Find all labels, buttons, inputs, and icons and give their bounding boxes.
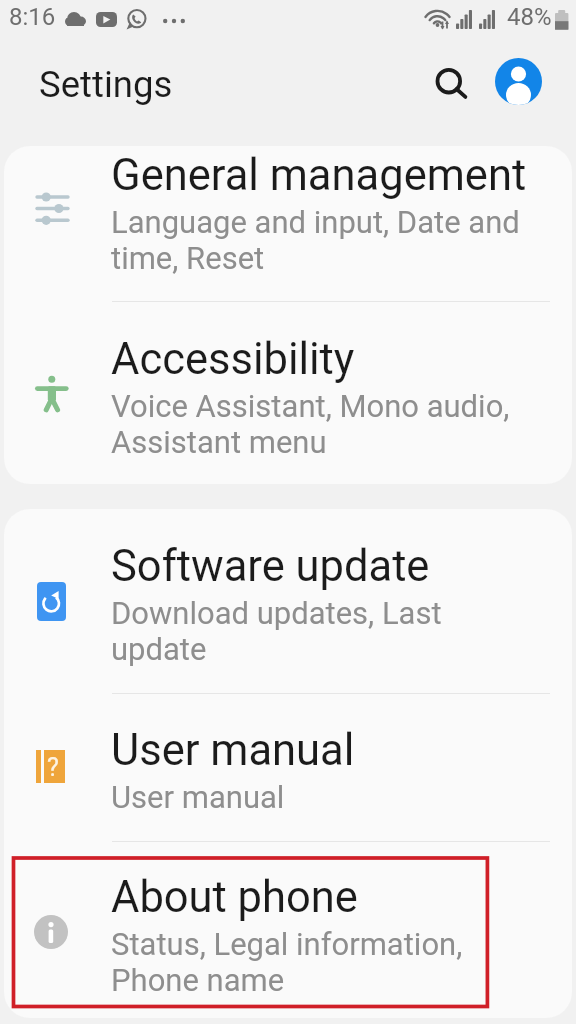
staticText: Status, Legal information, Phone name: [111, 926, 463, 998]
staticText: Accessibility: [111, 334, 355, 385]
staticText: ?: [47, 753, 59, 782]
staticText: Settings: [39, 63, 173, 106]
button[interactable]: Search: [424, 58, 482, 116]
button[interactable]: Accessibility: [4, 301, 572, 484]
staticText: Voice Assistant, Mono audio, Assistant m…: [111, 388, 510, 460]
staticText: About phone: [111, 872, 358, 923]
staticText: Download updates, Last update: [111, 595, 442, 667]
button[interactable]: Software update: [4, 509, 572, 693]
staticText: User manual: [111, 725, 355, 776]
staticText: 48%: [507, 3, 552, 31]
staticText: 8:16: [9, 3, 56, 31]
button[interactable]: Account: [495, 58, 542, 105]
staticText: Language and input, Date and time, Reset: [111, 204, 520, 276]
staticText: User manual: [111, 779, 285, 815]
staticText: General management: [111, 150, 527, 201]
button[interactable]: ?: [4, 693, 572, 841]
button[interactable]: About phone: [4, 841, 572, 1018]
staticText: Software update: [111, 541, 430, 592]
button[interactable]: General management: [4, 146, 572, 301]
